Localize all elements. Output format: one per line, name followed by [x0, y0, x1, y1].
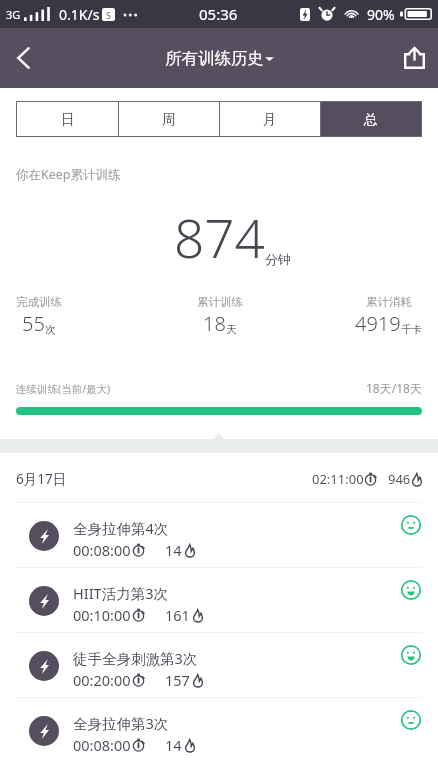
staticText: 00:10:00 [73, 605, 131, 625]
staticText: 946 [388, 470, 411, 488]
staticText: 14 [165, 540, 182, 560]
staticText: 全身拉伸第3次 [73, 713, 169, 733]
staticText: 3G [6, 7, 21, 22]
staticText: 所有训练历史 [165, 48, 264, 69]
button[interactable]: 月 [220, 102, 320, 136]
staticText: 14 [165, 735, 182, 755]
staticText: 周 [162, 111, 176, 128]
button[interactable]: HIIT活力第3次 [0, 568, 438, 632]
staticText: 874 [174, 201, 265, 273]
staticText: 徒手全身刺激第3次 [73, 648, 198, 668]
staticText: S [106, 9, 111, 21]
staticText: 全身拉伸第4次 [73, 518, 169, 538]
button[interactable]: 徒手全身刺激第3次 [0, 633, 438, 697]
staticText: 157 [165, 670, 190, 690]
staticText: 日 [61, 111, 75, 128]
staticText: 你在Keep累计训练 [16, 166, 121, 183]
button[interactable]: 周 [119, 102, 219, 136]
button[interactable]: 日 [17, 102, 118, 136]
staticText: 18天/18天 [366, 380, 422, 396]
button[interactable]: 所有训练历史 [159, 42, 280, 75]
staticText: 总 [364, 111, 378, 128]
staticText: 161 [165, 605, 190, 625]
staticText: 05:36 [199, 4, 238, 24]
staticText: 00:08:00 [73, 735, 131, 755]
staticText: 18 [203, 310, 226, 337]
staticText: 00:08:00 [73, 540, 131, 560]
staticText: 月 [263, 111, 277, 128]
button[interactable]: 全身拉伸第3次 [0, 698, 438, 762]
staticText: 6月17日 [16, 470, 67, 488]
staticText: 累计训练 [197, 295, 243, 309]
staticText: 4919 [355, 310, 401, 337]
staticText: 累计消耗 [366, 295, 412, 309]
staticText: 天 [226, 323, 237, 336]
staticText: 完成训练 [16, 295, 62, 309]
staticText: HIIT活力第3次 [73, 583, 168, 603]
staticText: 分钟 [265, 251, 291, 267]
button[interactable]: 全身拉伸第4次 [0, 503, 438, 567]
button[interactable]: Share [390, 30, 438, 86]
staticText: 55 [22, 310, 45, 337]
button[interactable]: Back [0, 30, 47, 86]
staticText: 00:20:00 [73, 670, 131, 690]
staticText: 02:11:00 [312, 470, 364, 488]
staticText: 90% [367, 5, 395, 24]
staticText: 连续训练(当前/最大) [16, 382, 111, 396]
staticText: 次 [45, 323, 56, 336]
staticText: 0.1K/s [59, 5, 100, 24]
button[interactable]: 总 [321, 102, 421, 136]
staticText: 千卡 [401, 323, 422, 336]
